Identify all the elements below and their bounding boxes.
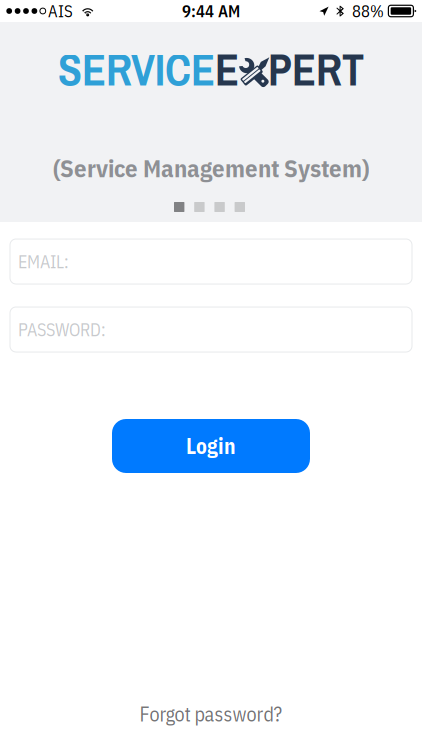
staticText: AIS [48, 0, 73, 22]
staticText: Login [186, 432, 236, 460]
staticText: E [215, 40, 239, 99]
button[interactable]: PASSWORD: [10, 307, 412, 352]
button[interactable]: Forgot password? [139, 701, 282, 727]
button[interactable]: EMAIL: [10, 239, 412, 284]
staticText: PERT [268, 40, 364, 99]
button[interactable]: Login [112, 419, 310, 473]
staticText: 9:44 AM [182, 0, 240, 22]
staticText: EMAIL: [18, 250, 69, 273]
staticText: (Service Management System) [53, 152, 369, 184]
staticText: 88% [352, 0, 384, 22]
staticText: Forgot password? [139, 701, 282, 727]
staticText: SERVICE [58, 40, 215, 99]
staticText: PASSWORD: [18, 318, 106, 341]
